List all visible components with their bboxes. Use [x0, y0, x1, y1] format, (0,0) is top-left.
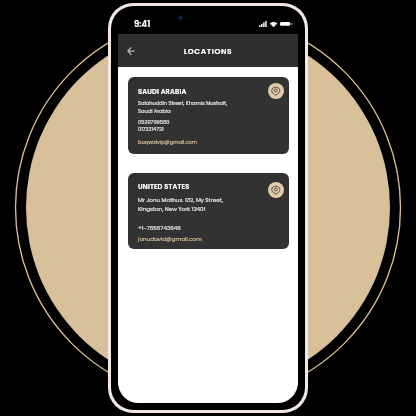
- staticText: 9:41: [134, 18, 151, 30]
- button[interactable]: SAUDI ARABIA: [128, 77, 289, 154]
- button[interactable]: Back: [122, 42, 140, 60]
- staticText: LOCATIONS: [118, 46, 298, 56]
- staticText: buqwalvip@gmail.com: [138, 139, 198, 146]
- staticText: 0530799580: [138, 119, 170, 126]
- button[interactable]: UNITED STATES: [128, 173, 289, 249]
- staticText: Mr Jonu Mathus. 132, My Street,: [138, 196, 223, 204]
- staticText: UNITED STATES: [138, 182, 190, 191]
- staticText: 0172214721: [138, 126, 164, 133]
- staticText: +1-7656743646: [138, 224, 181, 232]
- staticText: Saudi Arabia: [138, 108, 171, 115]
- staticText: SAUDI ARABIA: [138, 87, 187, 96]
- button[interactable]: Open map location: [268, 182, 284, 198]
- staticText: Kingston, New York 12401: [138, 205, 206, 213]
- staticText: Salahuddin Street, Khamis Mushait,: [138, 100, 228, 107]
- button[interactable]: Open map location: [268, 83, 284, 99]
- staticText: jonudavid@gmail.com: [138, 235, 202, 243]
